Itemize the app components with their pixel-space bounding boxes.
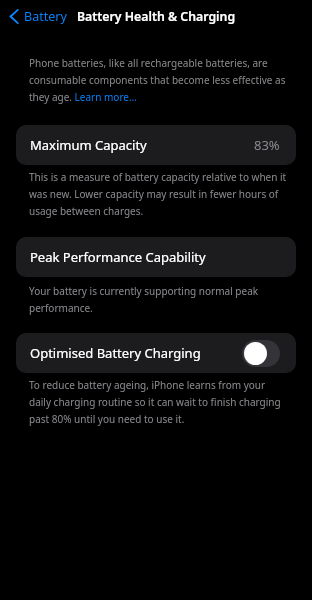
button[interactable]: Back bbox=[0, 3, 75, 30]
other: Back bbox=[9, 9, 19, 24]
button[interactable]: Peak Performance Capability bbox=[16, 237, 296, 277]
button[interactable]: Maximum Capacity bbox=[16, 125, 296, 165]
staticText: Phone batteries, like all rechargeable b… bbox=[29, 56, 288, 104]
button[interactable]: Optimised Battery Charging toggle bbox=[242, 340, 280, 367]
staticText: Optimised Battery Charging bbox=[30, 344, 201, 362]
staticText: 83% bbox=[254, 136, 280, 154]
staticText: To reduce battery ageing, iPhone learns … bbox=[29, 378, 288, 426]
staticText: Your battery is currently supporting nor… bbox=[29, 284, 288, 315]
staticText: Battery bbox=[24, 8, 67, 25]
button[interactable]: Optimised Battery Charging bbox=[16, 333, 296, 373]
staticText: Battery Health & Charging bbox=[77, 8, 236, 25]
staticText: Peak Performance Capability bbox=[30, 248, 206, 266]
staticText: Maximum Capacity bbox=[30, 136, 147, 154]
staticText: This is a measure of battery capacity re… bbox=[29, 170, 288, 218]
